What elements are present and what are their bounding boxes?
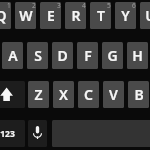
button[interactable]: H bbox=[127, 42, 148, 69]
staticText: W bbox=[19, 6, 33, 25]
staticText: Q bbox=[0, 6, 7, 25]
staticText: Y bbox=[121, 6, 130, 25]
button[interactable]: A bbox=[2, 42, 23, 69]
staticText: 3 bbox=[57, 2, 61, 10]
staticText: Z bbox=[34, 85, 43, 104]
button[interactable]: C bbox=[78, 81, 99, 108]
staticText: C bbox=[84, 85, 93, 104]
button[interactable]: F bbox=[77, 42, 98, 69]
button[interactable]: Q bbox=[0, 2, 11, 29]
button[interactable]: R bbox=[65, 2, 86, 29]
staticText: V bbox=[109, 85, 118, 104]
staticText: T bbox=[97, 6, 105, 25]
staticText: 1 bbox=[7, 2, 11, 10]
button[interactable]: V bbox=[103, 81, 124, 108]
staticText: 6 bbox=[132, 2, 136, 10]
staticText: 2 bbox=[32, 2, 36, 10]
button[interactable]: B bbox=[128, 81, 149, 108]
button[interactable]: Voice input bbox=[28, 120, 47, 147]
staticText: A bbox=[8, 46, 18, 65]
staticText: S bbox=[34, 46, 42, 65]
button[interactable]: Z bbox=[28, 81, 49, 108]
staticText: R bbox=[71, 6, 81, 25]
button[interactable]: S bbox=[27, 42, 48, 69]
staticText: ?123 bbox=[0, 128, 15, 140]
staticText: D bbox=[57, 46, 68, 65]
button[interactable]: ?123 bbox=[0, 120, 25, 147]
staticText: F bbox=[84, 46, 92, 65]
button[interactable]: T bbox=[90, 2, 111, 29]
button[interactable]: D bbox=[52, 42, 73, 69]
button[interactable]: G bbox=[102, 42, 123, 69]
staticText: U bbox=[145, 6, 150, 25]
button[interactable]: Shift bbox=[0, 81, 25, 108]
staticText: H bbox=[132, 46, 143, 65]
button[interactable]: W bbox=[15, 2, 36, 29]
button[interactable]: X bbox=[53, 81, 74, 108]
staticText: E bbox=[47, 6, 55, 25]
staticText: X bbox=[59, 85, 68, 104]
button[interactable]: Y bbox=[115, 2, 136, 29]
staticText: 4 bbox=[82, 2, 86, 10]
staticText: G bbox=[107, 46, 118, 65]
button[interactable]: E bbox=[40, 2, 61, 29]
button[interactable]: U bbox=[140, 2, 150, 29]
staticText: B bbox=[134, 85, 144, 104]
staticText: 5 bbox=[107, 2, 111, 10]
